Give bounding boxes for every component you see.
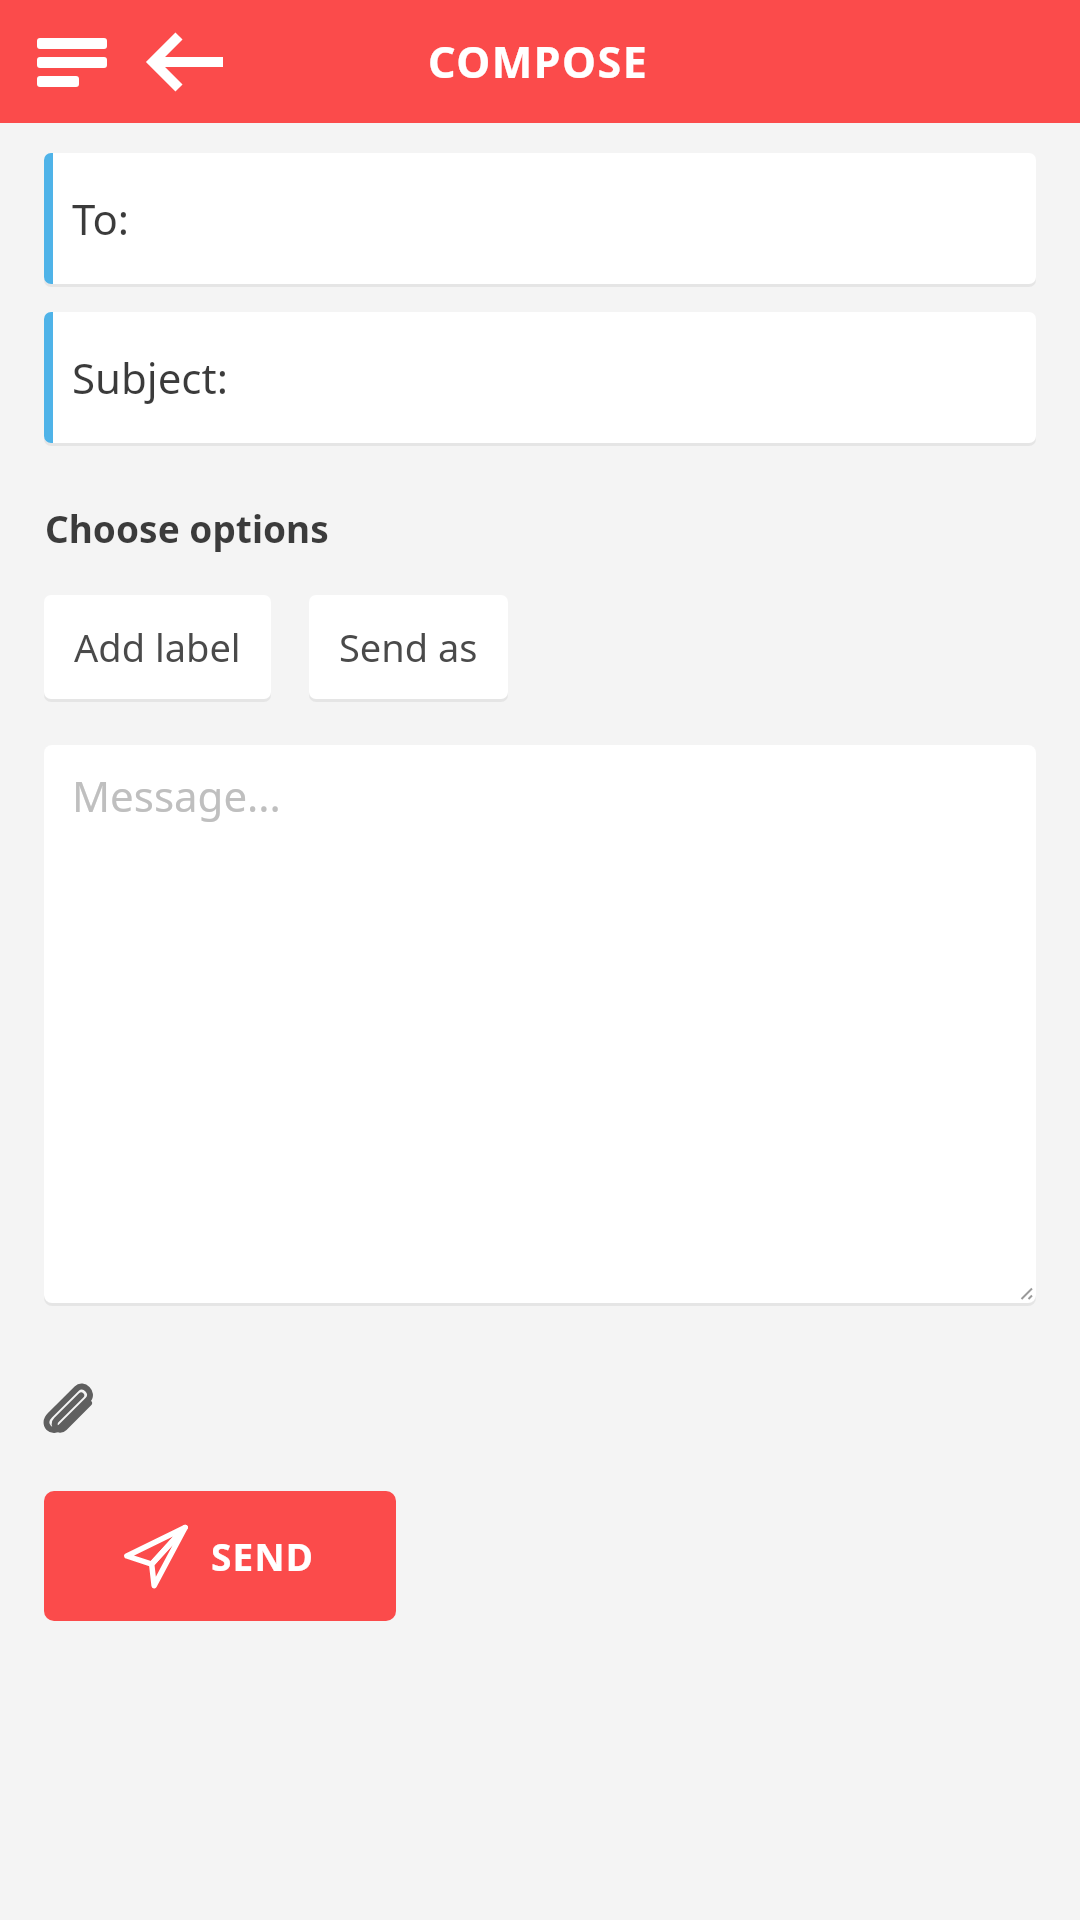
staticText: Add label bbox=[74, 621, 241, 673]
button[interactable]: Attach file bbox=[22, 1363, 118, 1459]
button[interactable]: SEND bbox=[44, 1491, 396, 1621]
staticText: SEND bbox=[211, 1531, 315, 1581]
button[interactable]: Menu bbox=[14, 7, 130, 117]
button[interactable]: Send as bbox=[309, 595, 508, 699]
button[interactable]: Subject: bbox=[44, 312, 1036, 443]
staticText: Message... bbox=[72, 767, 281, 824]
button[interactable]: To: bbox=[44, 153, 1036, 284]
staticText: Send as bbox=[339, 621, 478, 673]
staticText: To: bbox=[72, 190, 130, 247]
button[interactable]: Back bbox=[132, 7, 242, 117]
staticText: Subject: bbox=[72, 349, 228, 406]
staticText: COMPOSE bbox=[428, 32, 649, 91]
button[interactable]: Message... bbox=[44, 745, 1036, 1303]
button[interactable]: Add label bbox=[44, 595, 271, 699]
staticText: Choose options bbox=[45, 503, 329, 553]
